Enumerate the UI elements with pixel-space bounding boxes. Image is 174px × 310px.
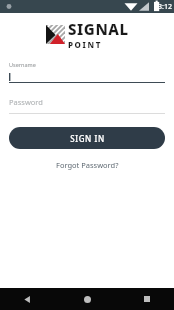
staticText: Username: [9, 61, 36, 68]
staticText: Forgot Password?: [56, 160, 119, 170]
staticText: SIGNAL: [68, 19, 129, 39]
button[interactable]: Recent apps: [138, 290, 156, 308]
button[interactable]: Back: [18, 290, 36, 308]
staticText: 3:12: [158, 2, 172, 12]
button[interactable]: Forgot Password?: [48, 157, 127, 173]
button[interactable]: Home: [78, 290, 96, 308]
staticText: POINT: [68, 39, 102, 49]
button[interactable]: SIGN IN: [9, 127, 165, 149]
staticText: Password: [9, 97, 43, 107]
staticText: SIGN IN: [70, 133, 105, 144]
